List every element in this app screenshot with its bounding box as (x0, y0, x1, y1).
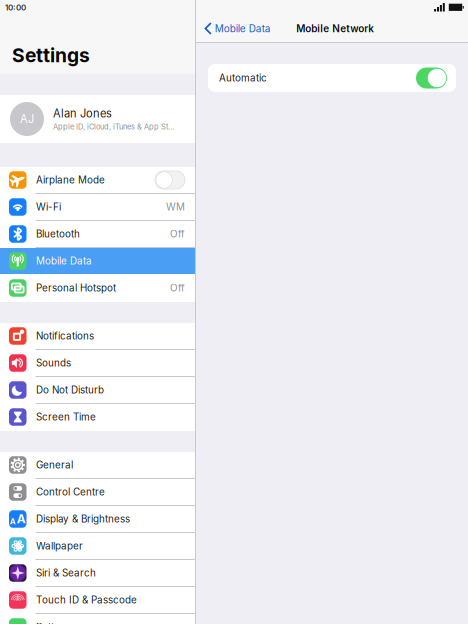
button[interactable]: Wallpaper (0, 533, 195, 560)
button[interactable]: Mobile Data (196, 15, 271, 42)
staticText: Mobile Data (36, 255, 92, 267)
button[interactable]: Battery (0, 614, 195, 624)
staticText: Airplane Mode (36, 174, 105, 186)
staticText: Do Not Disturb (36, 384, 104, 396)
staticText: Wallpaper (36, 540, 83, 552)
button[interactable]: Notifications (0, 323, 195, 350)
staticText: Wi-Fi (36, 201, 61, 213)
button[interactable]: Wi-Fi (0, 194, 195, 221)
staticText: Settings (12, 44, 90, 67)
button[interactable]: Mobile Data (0, 248, 195, 275)
staticText: 10:00 (5, 3, 26, 12)
staticText: Mobile Data (215, 22, 271, 35)
button[interactable]: Control Centre (0, 479, 195, 506)
staticText: Touch ID & Passcode (36, 594, 137, 606)
button[interactable]: Bluetooth (0, 221, 195, 248)
button[interactable]: Siri & Search (0, 560, 195, 587)
staticText: Automatic (219, 72, 267, 84)
button[interactable]: Personal Hotspot (0, 275, 195, 302)
staticText: WM (166, 201, 185, 213)
staticText: Bluetooth (36, 228, 80, 240)
button[interactable]: Sounds (0, 350, 195, 377)
staticText: Siri & Search (36, 567, 96, 579)
staticText: Off (170, 228, 185, 240)
staticText: Display & Brightness (36, 513, 130, 525)
button[interactable]: Screen Time (0, 404, 195, 431)
staticText: Mobile Network (296, 22, 374, 35)
button[interactable]: Airplane Mode (0, 167, 195, 194)
staticText: Control Centre (36, 486, 105, 498)
button[interactable]: Do Not Disturb (0, 377, 195, 404)
staticText: General (36, 459, 73, 471)
staticText: Sounds (36, 357, 71, 369)
button[interactable]: A (0, 506, 195, 533)
staticText: Off (170, 282, 185, 294)
staticText: A (17, 512, 26, 526)
button[interactable]: AJ (0, 95, 195, 143)
staticText: Apple ID, iCloud, iTunes & App St… (53, 122, 174, 131)
staticText: Personal Hotspot (36, 282, 116, 294)
staticText: Notifications (36, 330, 94, 342)
staticText: A (10, 517, 16, 526)
staticText: Battery (36, 621, 70, 624)
button[interactable]: Automatic (208, 64, 456, 92)
staticText: Alan Jones (53, 107, 112, 120)
staticText: AJ (20, 112, 34, 126)
button[interactable]: Touch ID & Passcode (0, 587, 195, 614)
staticText: Screen Time (36, 411, 96, 423)
button[interactable]: General (0, 452, 195, 479)
